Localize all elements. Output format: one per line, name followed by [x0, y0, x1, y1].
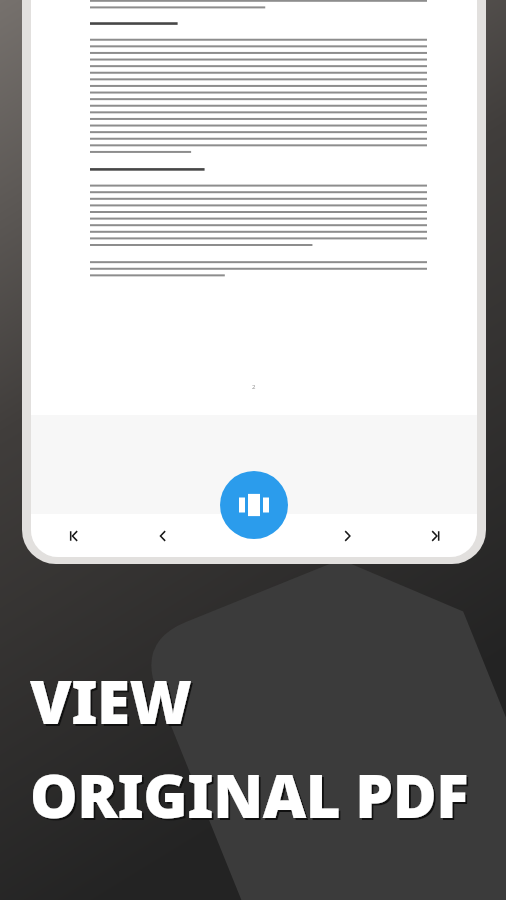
button[interactable]: Previous page — [119, 514, 207, 557]
staticText: VIEW — [32, 662, 194, 744]
button[interactable]: First page — [31, 514, 119, 557]
staticText: 2 — [252, 383, 256, 391]
staticText: ORIGINAL PDF — [30, 754, 469, 836]
button[interactable]: Next page — [303, 514, 390, 557]
button[interactable]: Last page — [390, 514, 477, 557]
button[interactable]: Switch view — [220, 471, 288, 539]
staticText: ORIGINAL PDF — [32, 756, 471, 838]
staticText: VIEW — [30, 660, 192, 742]
